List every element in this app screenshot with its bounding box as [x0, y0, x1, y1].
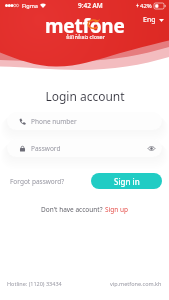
button[interactable]: Sign in — [91, 173, 162, 189]
staticText: Eng — [143, 15, 156, 25]
staticText: Hotline: (1120) 33434 — [7, 280, 62, 287]
staticText: Figma — [22, 2, 38, 9]
staticText: vip.metfone.com.kh — [110, 280, 162, 287]
staticText: Password — [31, 144, 61, 153]
staticText: Don't have account? — [41, 205, 105, 214]
staticText: Login account — [45, 88, 125, 104]
button[interactable]: Password — [7, 139, 162, 157]
button[interactable]: Eng — [140, 14, 167, 26]
staticText: 9:42 AM — [78, 1, 103, 10]
button[interactable]: Sign up — [105, 205, 128, 214]
staticText: 42% — [140, 2, 152, 10]
staticText: Sign in — [114, 176, 140, 187]
button[interactable]: Forgot password? — [10, 177, 65, 186]
button[interactable]: Phone number — [7, 112, 162, 130]
staticText: metfone — [45, 13, 125, 39]
staticText: Phone number — [31, 117, 77, 126]
other: Show password — [148, 146, 155, 151]
staticText: ទំនាក់ទំនង closer — [66, 33, 105, 40]
